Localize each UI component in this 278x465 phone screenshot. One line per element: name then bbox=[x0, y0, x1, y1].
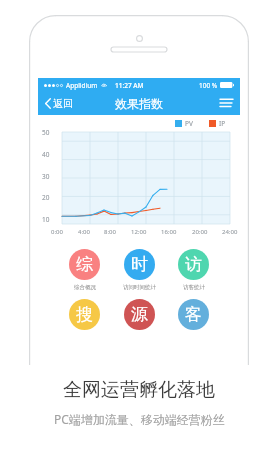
button[interactable]: 源 bbox=[122, 298, 157, 331]
staticText: 综合概况 bbox=[74, 284, 96, 291]
staticText: 4:00 bbox=[78, 228, 90, 236]
staticText: 搜 bbox=[76, 304, 93, 325]
staticText: 访问时间统计 bbox=[123, 284, 156, 291]
button[interactable]: 客 bbox=[176, 298, 211, 331]
staticText: 100 % bbox=[199, 81, 218, 90]
staticText: 12:00 bbox=[131, 228, 147, 236]
staticText: 16:00 bbox=[161, 228, 177, 236]
button[interactable]: 综 bbox=[67, 248, 102, 292]
staticText: Applidium bbox=[66, 81, 98, 90]
staticText: 0:00 bbox=[51, 228, 63, 236]
staticText: PV bbox=[185, 119, 193, 128]
button[interactable]: 访 bbox=[176, 248, 211, 292]
staticText: 10 bbox=[42, 215, 50, 224]
button[interactable]: 时 bbox=[121, 248, 158, 292]
button[interactable]: 搜 bbox=[67, 298, 102, 331]
staticText: 20 bbox=[42, 193, 50, 202]
staticText: PC端增加流量、移动端经营粉丝 bbox=[54, 411, 225, 427]
staticText: 访客统计 bbox=[183, 284, 205, 291]
staticText: 时 bbox=[131, 254, 148, 275]
staticText: 50 bbox=[42, 128, 50, 137]
staticText: 客 bbox=[185, 304, 202, 325]
staticText: 40 bbox=[42, 150, 50, 159]
staticText: 返回 bbox=[53, 97, 73, 110]
staticText: 20:00 bbox=[192, 228, 208, 236]
staticText: 8:00 bbox=[104, 228, 116, 236]
staticText: 综 bbox=[76, 254, 93, 275]
staticText: 11:27 AM bbox=[115, 81, 144, 90]
staticText: IP bbox=[219, 119, 226, 128]
button[interactable]: 返回 bbox=[43, 94, 75, 113]
staticText: 24:00 bbox=[222, 228, 238, 236]
staticText: 30 bbox=[42, 172, 50, 181]
staticText: 效果指数 bbox=[115, 96, 163, 111]
staticText: 源 bbox=[131, 304, 148, 325]
staticText: 全网运营孵化落地 bbox=[63, 378, 215, 402]
staticText: 访 bbox=[185, 254, 202, 275]
button[interactable]: Menu bbox=[218, 96, 235, 111]
